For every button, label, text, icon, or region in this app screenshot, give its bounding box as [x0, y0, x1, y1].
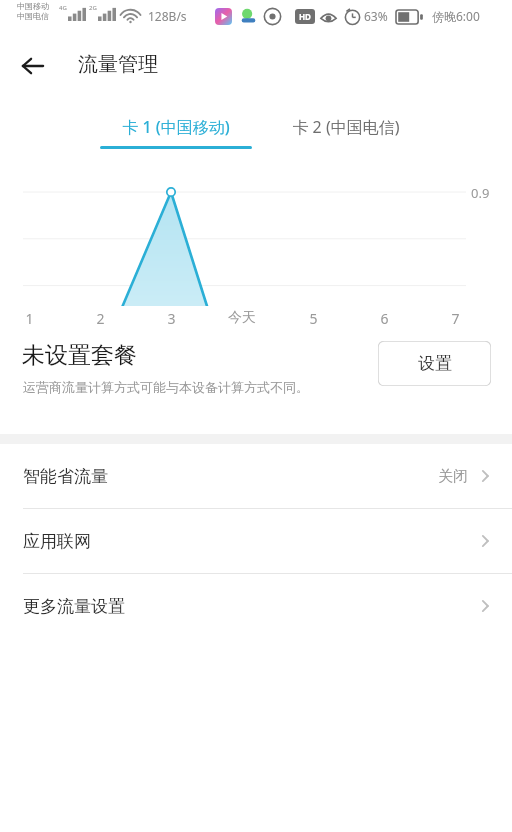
- staticText: 128B/s: [148, 8, 187, 24]
- staticText: 2G: [89, 4, 97, 12]
- staticText: 设置: [418, 353, 452, 374]
- staticText: 智能省流量: [23, 466, 108, 487]
- staticText: 卡 2 (中国电信): [292, 116, 400, 138]
- staticText: 应用联网: [23, 531, 91, 552]
- staticText: 53.39 MB: [208, 365, 278, 387]
- staticText: 3: [167, 309, 176, 328]
- button[interactable]: 更多流量设置: [0, 574, 512, 638]
- button[interactable]: 卡 1 (中国移动): [95, 96, 257, 152]
- staticText: 1: [25, 309, 34, 328]
- button[interactable]: 智能省流量: [0, 444, 512, 508]
- staticText: 流量管理: [78, 52, 158, 77]
- staticText: 4G: [59, 4, 67, 12]
- staticText: 关闭: [438, 467, 468, 486]
- staticText: 0.9: [471, 184, 490, 202]
- staticText: 中国移动: [17, 1, 49, 11]
- button[interactable]: 设置: [378, 341, 491, 386]
- staticText: 未设置套餐: [22, 341, 137, 370]
- staticText: 运营商流量计算方式可能与本设备计算方式不同。: [23, 379, 309, 395]
- button[interactable]: 应用联网: [0, 509, 512, 573]
- staticText: 今天: [228, 309, 256, 327]
- button[interactable]: Back: [10, 43, 56, 89]
- staticText: 更多流量设置: [23, 596, 125, 617]
- button[interactable]: 卡 2 (中国电信): [265, 96, 427, 152]
- staticText: 卡 1 (中国移动): [122, 116, 230, 138]
- staticText: 傍晚6:00: [432, 8, 480, 24]
- staticText: 2: [96, 309, 105, 328]
- staticText: 中国电信: [17, 11, 49, 21]
- staticText: 63%: [364, 8, 388, 24]
- staticText: 6: [380, 309, 389, 328]
- staticText: HD: [299, 11, 311, 22]
- staticText: 7: [451, 309, 460, 328]
- staticText: 5: [309, 309, 318, 328]
